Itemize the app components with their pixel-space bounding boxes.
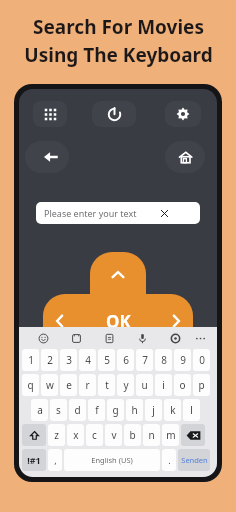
staticText: !#1 xyxy=(27,454,41,466)
button[interactable]: f xyxy=(88,399,105,421)
button[interactable]: 5 xyxy=(98,349,115,371)
staticText: e xyxy=(66,378,72,392)
button[interactable]: Back xyxy=(25,141,69,173)
button[interactable]: a xyxy=(31,399,48,421)
button[interactable] xyxy=(43,294,193,350)
staticText: c xyxy=(92,428,97,442)
button[interactable]: Tool 2 xyxy=(93,328,126,348)
staticText: a xyxy=(37,403,43,417)
button[interactable]: Senden xyxy=(178,449,210,471)
button[interactable]: o xyxy=(174,374,191,396)
button[interactable]: Power xyxy=(92,101,136,127)
button[interactable]: Tool 1 xyxy=(60,328,93,348)
staticText: s xyxy=(56,403,61,417)
button[interactable]: More xyxy=(192,328,209,348)
button[interactable]: Tool 3 xyxy=(126,328,159,348)
button[interactable]: b xyxy=(124,424,141,446)
staticText: z xyxy=(54,428,59,442)
staticText: Search For Movies xyxy=(33,14,204,40)
staticText: , xyxy=(54,454,57,466)
button[interactable]: . xyxy=(162,449,176,471)
staticText: Please enter your text xyxy=(44,207,137,219)
staticText: 4 xyxy=(85,353,91,367)
staticText: 1 xyxy=(28,353,34,367)
button[interactable]: Backspace xyxy=(181,424,205,446)
staticText: Using The Keyboard xyxy=(24,42,213,68)
staticText: w xyxy=(46,378,54,392)
staticText: q xyxy=(27,378,34,392)
staticText: 2 xyxy=(47,353,53,367)
staticText: y xyxy=(123,378,129,392)
staticText: 3 xyxy=(66,353,72,367)
staticText: 7 xyxy=(142,353,148,367)
button[interactable]: g xyxy=(107,399,124,421)
button[interactable]: c xyxy=(86,424,103,446)
button[interactable]: Tool 0 xyxy=(27,328,60,348)
button[interactable]: Apps xyxy=(33,101,67,127)
button[interactable]: Home xyxy=(165,141,205,173)
staticText: m xyxy=(166,428,176,442)
button[interactable]: Please enter your text xyxy=(36,202,200,224)
button[interactable]: z xyxy=(48,424,65,446)
staticText: 5 xyxy=(104,353,110,367)
button[interactable]: 9 xyxy=(174,349,191,371)
button[interactable]: i xyxy=(155,374,172,396)
button[interactable]: j xyxy=(145,399,162,421)
button[interactable]: 8 xyxy=(155,349,172,371)
staticText: x xyxy=(73,428,79,442)
button[interactable]: , xyxy=(48,449,62,471)
staticText: u xyxy=(141,378,148,392)
button[interactable]: h xyxy=(126,399,143,421)
button[interactable]: y xyxy=(117,374,134,396)
button[interactable]: 1 xyxy=(22,349,39,371)
button[interactable]: 2 xyxy=(41,349,58,371)
staticText: k xyxy=(170,403,176,417)
staticText: OK xyxy=(106,310,131,333)
staticText: 0 xyxy=(199,353,205,367)
button[interactable]: 6 xyxy=(117,349,134,371)
button[interactable]: 7 xyxy=(136,349,153,371)
staticText: v xyxy=(111,428,117,442)
button[interactable]: s xyxy=(50,399,67,421)
button[interactable]: Shift xyxy=(22,424,46,446)
staticText: i xyxy=(162,378,165,392)
button[interactable]: k xyxy=(164,399,181,421)
staticText: b xyxy=(129,428,136,442)
button[interactable]: Tool 4 xyxy=(159,328,192,348)
staticText: j xyxy=(152,403,155,417)
button[interactable]: r xyxy=(79,374,96,396)
staticText: f xyxy=(95,403,99,417)
button[interactable]: q xyxy=(22,374,39,396)
button[interactable]: Settings xyxy=(165,101,201,127)
button[interactable]: 0 xyxy=(193,349,210,371)
button[interactable]: u xyxy=(136,374,153,396)
button[interactable]: l xyxy=(183,399,200,421)
staticText: r xyxy=(85,378,90,392)
button[interactable]: Up xyxy=(90,252,146,348)
button[interactable]: 4 xyxy=(79,349,96,371)
button[interactable]: w xyxy=(41,374,58,396)
staticText: l xyxy=(190,403,193,417)
button[interactable]: e xyxy=(60,374,77,396)
button[interactable]: English (US) xyxy=(64,449,160,471)
staticText: o xyxy=(179,378,186,392)
button[interactable]: p xyxy=(193,374,210,396)
staticText: n xyxy=(148,428,155,442)
button[interactable]: 3 xyxy=(60,349,77,371)
staticText: d xyxy=(74,403,81,417)
staticText: 9 xyxy=(180,353,186,367)
staticText: . xyxy=(168,454,171,466)
staticText: 6 xyxy=(123,353,129,367)
staticText: English (US) xyxy=(91,455,133,465)
button[interactable]: n xyxy=(143,424,160,446)
button[interactable]: v xyxy=(105,424,122,446)
button[interactable]: d xyxy=(69,399,86,421)
button[interactable]: !#1 xyxy=(22,449,46,471)
staticText: h xyxy=(131,403,138,417)
button[interactable]: x xyxy=(67,424,84,446)
staticText: Senden xyxy=(181,455,208,465)
staticText: g xyxy=(112,403,119,417)
button[interactable]: OK xyxy=(101,308,135,334)
button[interactable]: m xyxy=(162,424,179,446)
button[interactable]: t xyxy=(98,374,115,396)
